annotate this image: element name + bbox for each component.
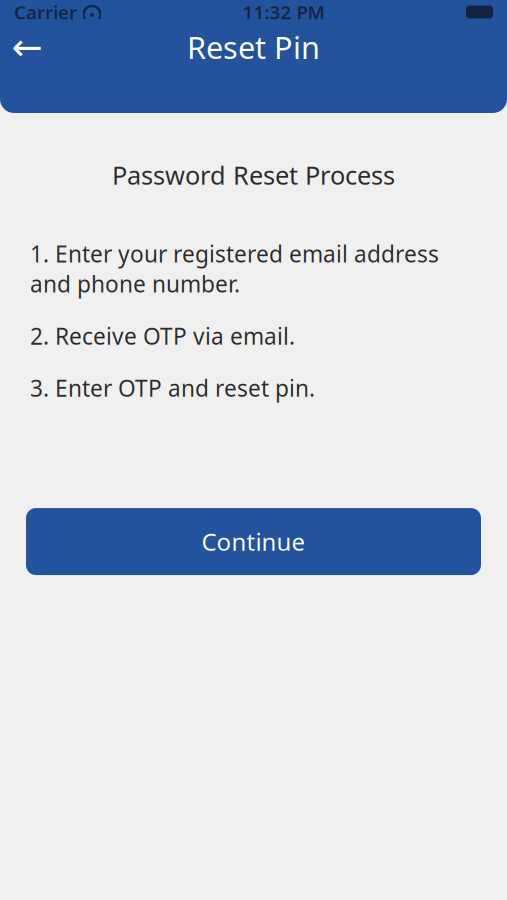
staticText: Carrier xyxy=(14,0,77,24)
button[interactable]: Back xyxy=(0,24,54,70)
staticText: 2. Receive OTP via email. xyxy=(30,321,295,351)
staticText: 3. Enter OTP and reset pin. xyxy=(30,373,315,403)
staticText: Password Reset Process xyxy=(112,158,395,192)
staticText: 1. Enter your registered email address a… xyxy=(30,239,439,299)
staticText: 11:32 PM xyxy=(242,0,324,24)
staticText: ← xyxy=(11,26,42,68)
staticText: Reset Pin xyxy=(187,27,320,67)
staticText: Continue xyxy=(201,526,305,557)
button[interactable]: Continue xyxy=(26,508,481,575)
